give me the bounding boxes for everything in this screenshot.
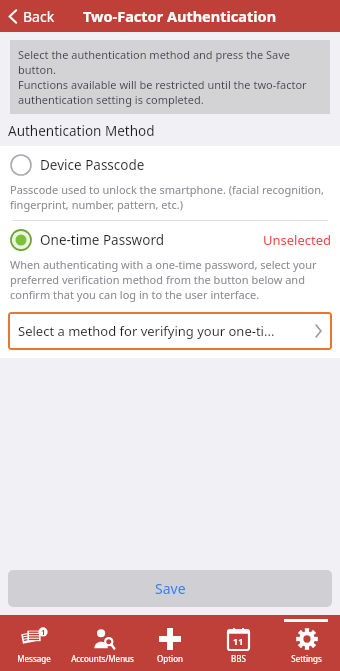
other: Settings [296,628,318,650]
other: BBS [228,628,249,650]
staticText: Message [17,653,51,664]
staticText: Settings [291,653,322,664]
other: Message [19,628,49,650]
other: Option [159,628,181,650]
button[interactable]: Message [0,615,68,671]
staticText: Passcode used to unlock the smartphone. … [10,182,328,212]
staticText: 11 [233,635,244,647]
staticText: Select a method for verifying your one-t… [18,322,275,340]
staticText: BBS [231,653,246,664]
button[interactable]: One-time Password [0,221,340,253]
staticText: Back [23,7,55,26]
button[interactable]: Option [136,615,204,671]
staticText: Select the authentication method and pre… [18,47,322,107]
staticText: Unselected [263,231,332,249]
button[interactable]: BBS [204,615,272,671]
staticText: Accounts/Menus [71,653,134,664]
staticText: When authenticating with a one-time pass… [10,257,326,302]
button[interactable]: Device Passcode [0,146,340,178]
staticText: Save [155,579,186,598]
staticText: Authentication Method [8,122,155,140]
staticText: Option [157,653,183,664]
button[interactable]: Accounts/Menus [68,615,136,671]
other: Accounts/Menus [91,628,115,650]
button[interactable]: Settings [272,615,340,671]
button[interactable]: Select a method for verifying your one-t… [8,312,332,350]
staticText: 1 [41,627,46,637]
button[interactable]: Save [8,570,332,607]
staticText: Device Passcode [40,156,145,174]
staticText: Two-Factor Authentication [83,6,277,26]
staticText: One-time Password [40,231,165,249]
button[interactable]: Back [0,0,61,32]
